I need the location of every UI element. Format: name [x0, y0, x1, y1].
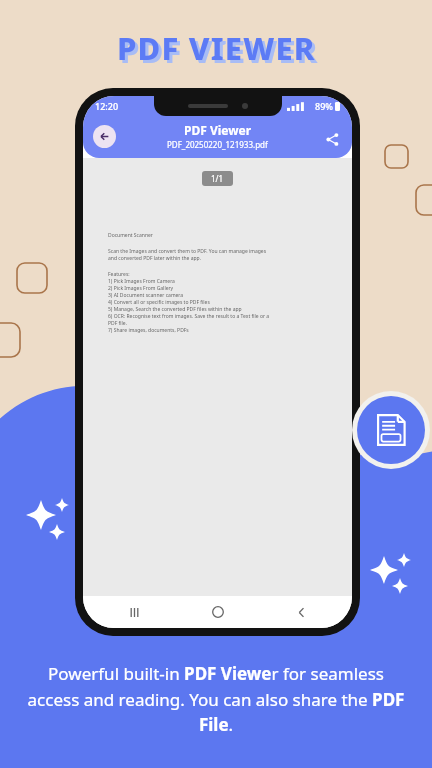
staticText: PDF Viewer [184, 122, 252, 138]
button[interactable]: PDF document [357, 396, 425, 464]
staticText: Document Scanner [108, 232, 153, 239]
staticText: 1/1 [211, 173, 224, 184]
staticText: PDF VIEWER [120, 30, 319, 72]
staticText: PDF_20250220_121933.pdf [167, 139, 268, 150]
staticText: Powerful built-in PDF Viewer for seamles… [22, 662, 410, 736]
staticText: 5) Manage, Search the converted PDF file… [108, 306, 242, 313]
staticText: 3) AI Document scanner camera [108, 292, 184, 299]
staticText: 12:20 [95, 100, 119, 112]
button[interactable]: Home [205, 599, 231, 625]
staticText: 4) Convert all or specific images to PDF… [108, 299, 210, 306]
staticText: 2) Pick Images From Gallery [108, 285, 174, 292]
staticText: 6) OCR: Recognise text from images. Save… [108, 313, 270, 320]
staticText: 1) Pick Images From Camera [108, 278, 175, 285]
button[interactable]: Recents [121, 599, 147, 625]
staticText: Features: [108, 271, 130, 278]
staticText: 7) Share images, documents, PDFs [108, 327, 189, 334]
button[interactable]: Share [322, 129, 342, 149]
button[interactable]: Back [93, 125, 116, 148]
staticText: 89% [315, 100, 333, 112]
staticText: PDF VIEWER [117, 27, 316, 69]
staticText: and converted PDF later within the app. [108, 255, 201, 262]
staticText: PDF file. [108, 320, 128, 327]
staticText: Scan the Images and convert them to PDF.… [108, 248, 267, 255]
button[interactable]: Back [288, 599, 314, 625]
